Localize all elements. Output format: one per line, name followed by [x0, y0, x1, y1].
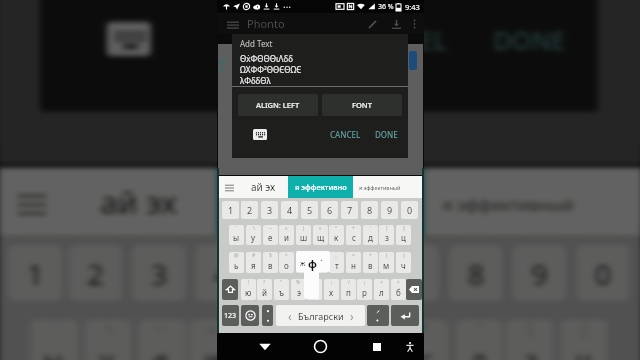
button[interactable]: -: [313, 252, 328, 273]
button[interactable]: «: [189, 319, 236, 360]
button[interactable]: ~: [263, 225, 278, 245]
button[interactable]: Home: [311, 333, 329, 360]
button[interactable]: [: [379, 225, 394, 245]
button[interactable]: Comma: [262, 305, 273, 326]
button[interactable]: ‹: [276, 305, 365, 326]
button[interactable]: я эффективно: [217, 168, 423, 236]
button[interactable]: Shift: [222, 279, 238, 300]
button[interactable]: Accessibility: [402, 333, 418, 360]
button[interactable]: $: [263, 252, 278, 273]
button[interactable]: ': [455, 319, 503, 360]
button[interactable]: ]: [560, 319, 607, 360]
button[interactable]: Menu: [225, 16, 241, 32]
button[interactable]: DONE: [371, 126, 402, 143]
button[interactable]: \: [84, 319, 132, 360]
staticText: 36 %: [378, 2, 394, 12]
button[interactable]: _: [329, 252, 344, 273]
button[interactable]: :: [307, 279, 322, 300]
staticText: `: [236, 225, 238, 232]
button[interactable]: ': [363, 225, 378, 245]
button[interactable]: (: [379, 252, 394, 273]
button[interactable]: CANCEL: [338, 13, 461, 65]
button[interactable]: 7: [385, 245, 439, 301]
button[interactable]: CANCEL: [326, 126, 365, 143]
button[interactable]: 2: [241, 201, 258, 219]
button[interactable]: 4: [281, 201, 298, 219]
button[interactable]: +: [363, 252, 378, 273]
button[interactable]: Emoji: [241, 305, 259, 326]
button[interactable]: 1: [222, 201, 239, 219]
button[interactable]: Keyboard: [253, 129, 267, 140]
button[interactable]: 3: [132, 245, 186, 301]
button[interactable]: 6: [321, 201, 338, 219]
button[interactable]: Save: [388, 16, 404, 32]
button[interactable]: Hide keyboard: [256, 333, 274, 360]
button[interactable]: @: [229, 252, 244, 273]
button[interactable]: <: [374, 279, 389, 300]
button[interactable]: »: [297, 319, 344, 360]
button[interactable]: |: [243, 319, 290, 360]
button[interactable]: *: [401, 319, 449, 360]
button[interactable]: 0: [576, 245, 630, 301]
button[interactable]: Keyboard settings: [2, 168, 59, 236]
button[interactable]: Recents: [368, 333, 386, 360]
button[interactable]: ]: [396, 225, 411, 245]
button[interactable]: 5: [301, 201, 318, 219]
button[interactable]: 0: [401, 201, 418, 219]
button[interactable]: More options: [407, 17, 421, 31]
staticText: ы: [43, 341, 65, 360]
button[interactable]: *: [346, 225, 361, 245]
button[interactable]: |: [296, 225, 311, 245]
button[interactable]: 5: [259, 245, 313, 301]
button[interactable]: «: [279, 225, 294, 245]
button[interactable]: >: [391, 279, 406, 300]
button[interactable]: ¡: [357, 279, 372, 300]
button[interactable]: 9: [512, 245, 566, 301]
button[interactable]: Period: [367, 305, 389, 326]
button[interactable]: Keyboard settings: [220, 176, 238, 198]
button[interactable]: ): [396, 252, 411, 273]
button[interactable]: \: [246, 225, 261, 245]
button[interactable]: я эффективный: [423, 168, 640, 236]
button[interactable]: 3: [261, 201, 278, 219]
button[interactable]: FONT: [322, 94, 402, 116]
button[interactable]: °: [329, 225, 344, 245]
button[interactable]: 8: [449, 245, 503, 301]
button[interactable]: &: [296, 252, 311, 273]
button[interactable]: Edit: [364, 16, 380, 32]
button[interactable]: [: [506, 319, 553, 360]
button[interactable]: !: [241, 279, 256, 300]
button[interactable]: `: [30, 319, 78, 360]
button[interactable]: 6: [322, 245, 376, 301]
button[interactable]: =: [346, 252, 361, 273]
button[interactable]: Backspace: [406, 279, 422, 300]
button[interactable]: ай эх: [68, 168, 208, 236]
button[interactable]: я эффективный: [353, 176, 423, 198]
button[interactable]: ай эх: [241, 176, 285, 198]
button[interactable]: %: [291, 279, 306, 300]
staticText: ΩΧΦΦ²ΘΘЄΘΩЄ: [240, 64, 302, 75]
button[interactable]: 1: [8, 245, 62, 301]
button[interactable]: »: [313, 225, 328, 245]
button[interactable]: ^: [279, 252, 294, 273]
button[interactable]: #: [246, 252, 261, 273]
button[interactable]: Enter: [391, 305, 419, 326]
button[interactable]: 4: [195, 245, 249, 301]
button[interactable]: DONE: [481, 13, 579, 65]
button[interactable]: ": [274, 279, 289, 300]
button[interactable]: /: [341, 279, 356, 300]
button[interactable]: 9: [381, 201, 398, 219]
button[interactable]: ~: [138, 319, 186, 360]
button[interactable]: ;: [324, 279, 339, 300]
button[interactable]: Keyboard: [106, 22, 151, 56]
button[interactable]: 7: [341, 201, 358, 219]
button[interactable]: Numbers: [222, 305, 239, 326]
button[interactable]: `: [229, 225, 244, 245]
button[interactable]: °: [347, 319, 395, 360]
button[interactable]: ALIGN: LEFT: [238, 94, 318, 116]
button[interactable]: 8: [361, 201, 378, 219]
button[interactable]: ?: [257, 279, 272, 300]
button[interactable]: я эффективно: [288, 176, 353, 198]
button[interactable]: 2: [68, 245, 122, 301]
